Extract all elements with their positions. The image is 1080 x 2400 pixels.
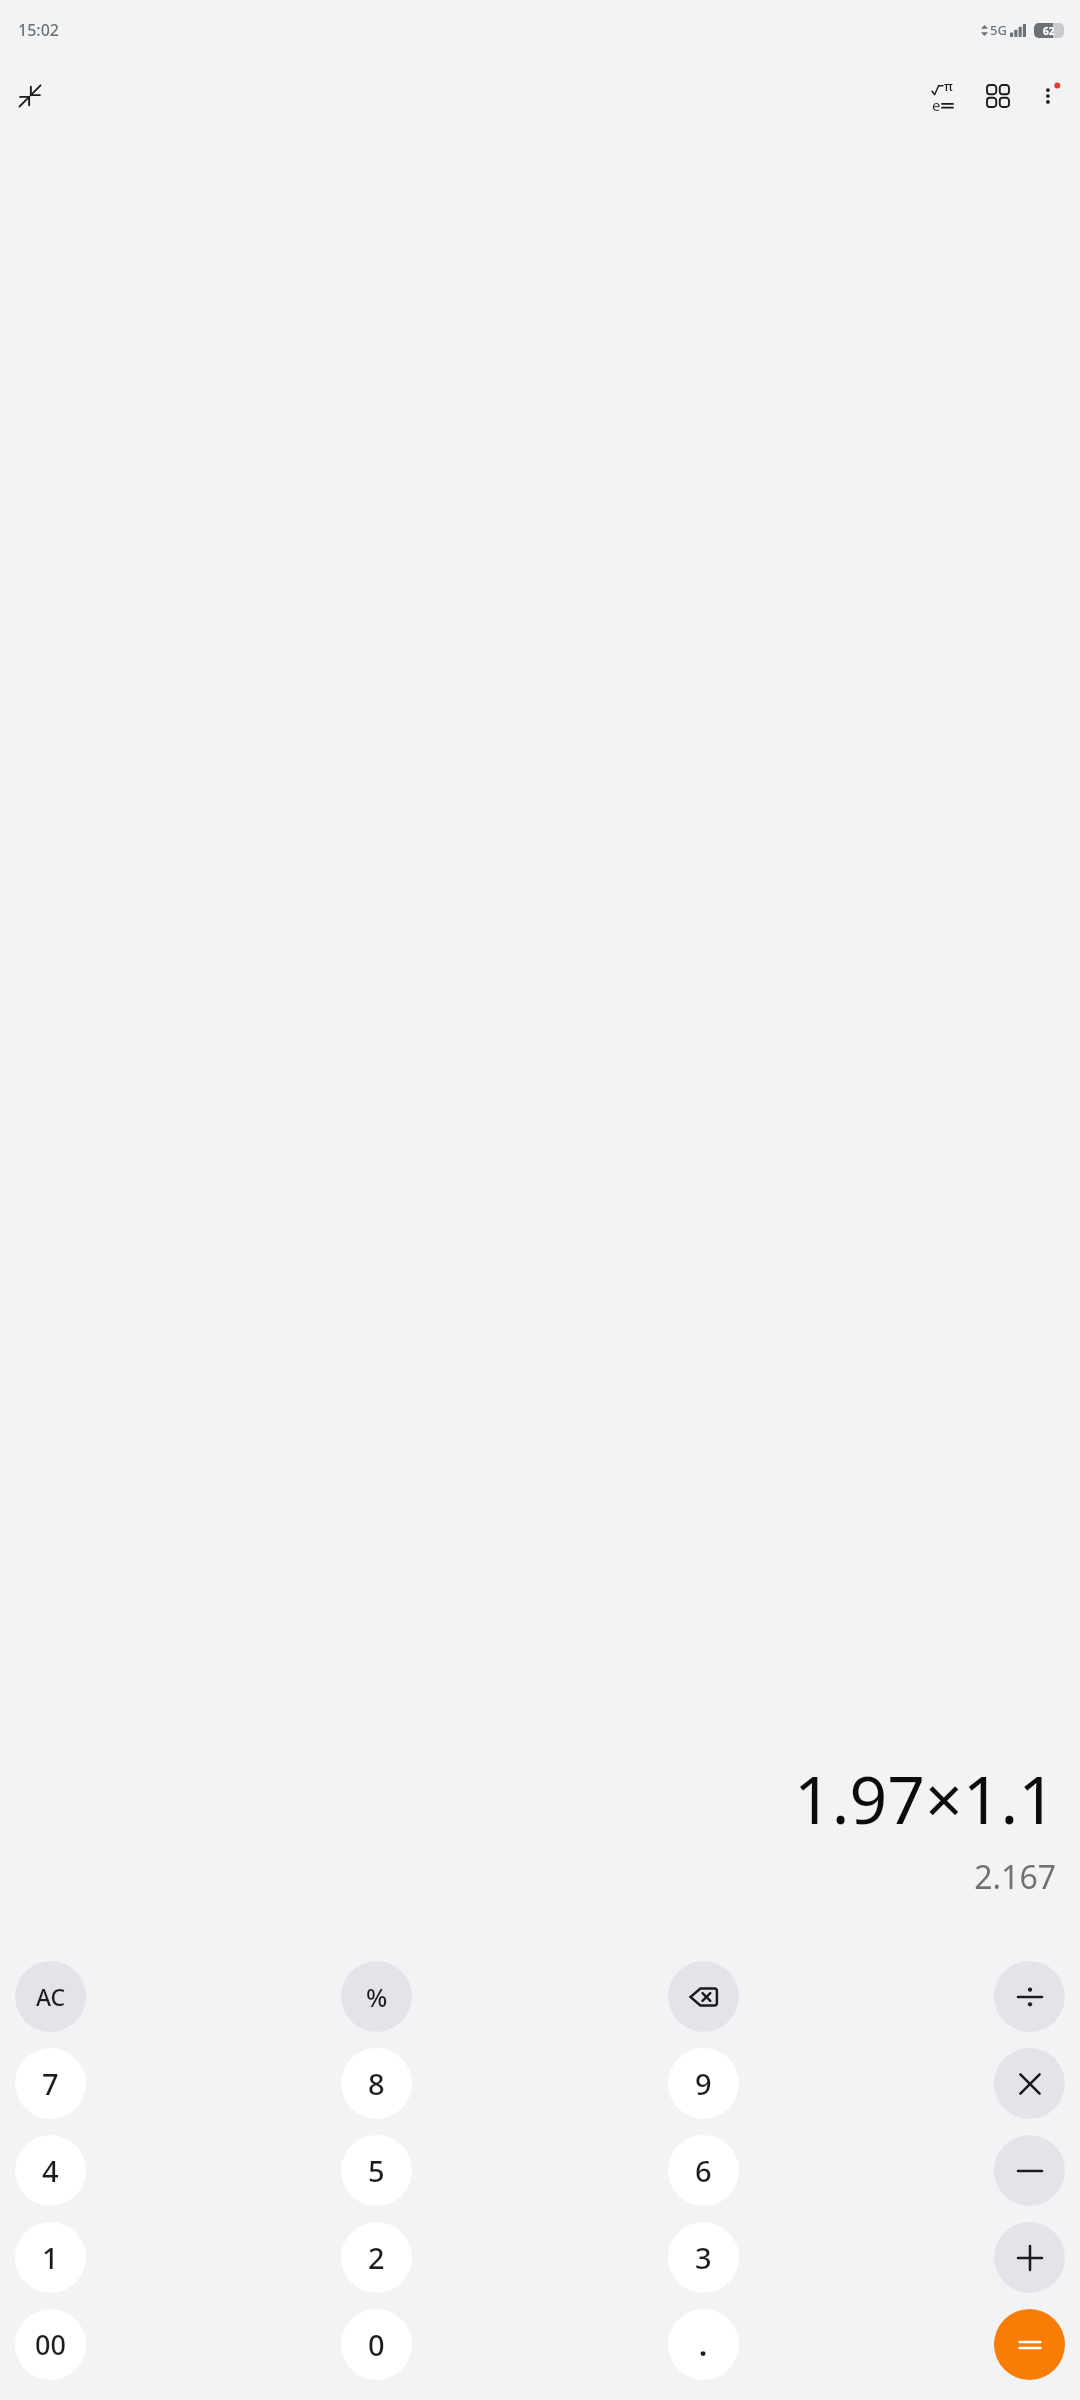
button[interactable]: 00	[15, 2309, 86, 2380]
staticText: 62	[1043, 24, 1055, 38]
button[interactable]: %	[341, 1961, 412, 2032]
button[interactable]: Plus	[994, 2222, 1065, 2293]
staticText: 15:02	[18, 19, 59, 41]
staticText: %	[366, 1980, 388, 2014]
button[interactable]: AC	[15, 1961, 86, 2032]
staticText: π	[944, 77, 953, 95]
button[interactable]: 5	[341, 2135, 412, 2206]
staticText: AC	[36, 1981, 66, 2012]
button[interactable]: 6	[668, 2135, 739, 2206]
staticText: 5G	[990, 21, 1007, 39]
button[interactable]: Layout	[974, 72, 1022, 120]
button[interactable]: Equals	[994, 2309, 1065, 2380]
staticText: 1	[42, 2238, 59, 2277]
staticText: 2	[368, 2238, 385, 2277]
staticText: e	[932, 95, 941, 115]
staticText: 4	[42, 2151, 59, 2190]
button[interactable]: 2	[341, 2222, 412, 2293]
staticText: 1.97×1.1	[794, 1753, 1056, 1843]
button[interactable]: 3	[668, 2222, 739, 2293]
button[interactable]: More options	[1026, 72, 1074, 120]
staticText: 3	[695, 2238, 712, 2277]
button[interactable]: 9	[668, 2048, 739, 2119]
button[interactable]: Multiply	[994, 2048, 1065, 2119]
staticText: 00	[35, 2326, 66, 2363]
staticText: 6	[695, 2151, 712, 2190]
button[interactable]: Minus	[994, 2135, 1065, 2206]
button[interactable]: Scientific mode	[918, 72, 966, 120]
button[interactable]: 0	[341, 2309, 412, 2380]
button[interactable]: Backspace	[668, 1961, 739, 2032]
staticText: .	[699, 2325, 708, 2364]
button[interactable]: Divide	[994, 1961, 1065, 2032]
staticText: 5	[368, 2151, 385, 2190]
staticText: 9	[695, 2064, 712, 2103]
button[interactable]: .	[668, 2309, 739, 2380]
button[interactable]: 8	[341, 2048, 412, 2119]
button[interactable]: 1	[15, 2222, 86, 2293]
button[interactable]: Collapse	[6, 72, 54, 120]
button[interactable]: 4	[15, 2135, 86, 2206]
staticText: 2.167	[974, 1855, 1056, 1899]
staticText: 0	[368, 2325, 385, 2364]
staticText: 7	[42, 2064, 59, 2103]
staticText: 8	[368, 2064, 385, 2103]
button[interactable]: 7	[15, 2048, 86, 2119]
